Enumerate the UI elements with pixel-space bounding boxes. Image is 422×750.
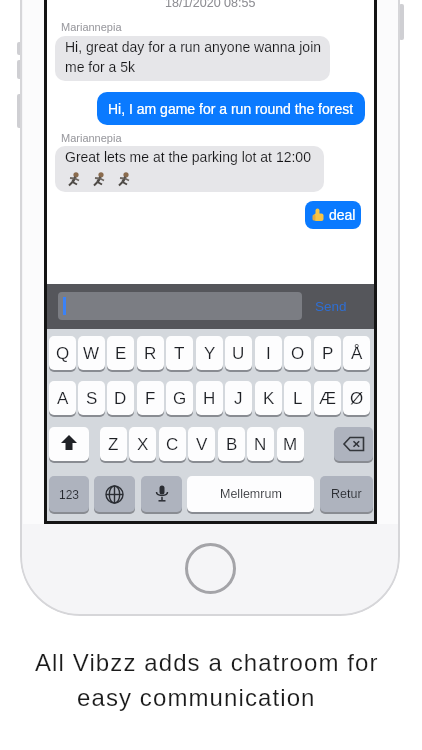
staticText: I [266, 344, 271, 363]
button[interactable]: T [166, 336, 193, 370]
button[interactable] [58, 292, 302, 320]
staticText: 18/1/2020 08:55 [165, 0, 256, 10]
staticText: T [174, 344, 185, 363]
button[interactable]: W [78, 336, 105, 370]
staticText: H [203, 389, 216, 408]
button[interactable]: Q [49, 336, 76, 370]
staticText: All Vibzz adds a chatroom for [35, 649, 379, 676]
button[interactable]: D [107, 381, 134, 415]
staticText: C [166, 435, 179, 454]
button[interactable]: Send [301, 284, 361, 329]
staticText: Hi, great day for a run anyone wanna joi… [65, 39, 322, 75]
button[interactable]: Mellemrum [187, 476, 314, 512]
staticText: S [86, 389, 98, 408]
button[interactable] [94, 476, 135, 512]
staticText: A [57, 389, 69, 408]
button[interactable]: H [196, 381, 223, 415]
button[interactable]: G [166, 381, 193, 415]
staticText: Mellemrum [220, 487, 282, 501]
button[interactable] [185, 543, 236, 594]
button[interactable]: E [107, 336, 134, 370]
staticText: V [196, 435, 208, 454]
button[interactable]: 123 [49, 476, 89, 512]
staticText: Y [204, 344, 216, 363]
staticText: D [114, 389, 127, 408]
staticText: Retur [331, 487, 362, 501]
button[interactable]: Å [343, 336, 370, 370]
button[interactable]: N [247, 427, 274, 461]
staticText: Å [351, 344, 363, 363]
button[interactable]: O [284, 336, 311, 370]
staticText: W [83, 344, 100, 363]
button[interactable]: U [225, 336, 252, 370]
button[interactable]: M [277, 427, 304, 461]
staticText: Ø [350, 389, 364, 408]
button[interactable]: R [137, 336, 164, 370]
button[interactable]: K [255, 381, 282, 415]
staticText: N [254, 435, 267, 454]
button[interactable]: Retur [320, 476, 373, 512]
button[interactable]: L [284, 381, 311, 415]
button[interactable]: Y [196, 336, 223, 370]
button[interactable]: X [129, 427, 156, 461]
staticText: G [173, 389, 187, 408]
staticText: Q [56, 344, 70, 363]
staticText: L [293, 389, 303, 408]
staticText: Mariannepia [61, 132, 122, 144]
staticText: X [137, 435, 149, 454]
button[interactable]: deal [305, 201, 361, 229]
staticText: K [263, 389, 275, 408]
staticText: J [234, 389, 243, 408]
button[interactable]: B [218, 427, 245, 461]
staticText: M [283, 435, 298, 454]
button[interactable] [141, 476, 182, 512]
staticText: Hi, I am game for a run round the forest [108, 101, 354, 117]
button[interactable] [49, 427, 89, 461]
button[interactable]: Ø [343, 381, 370, 415]
staticText: R [144, 344, 157, 363]
staticText: U [232, 344, 245, 363]
staticText: Mariannepia [61, 21, 122, 33]
staticText: easy communication [77, 684, 316, 711]
staticText: 123 [59, 488, 80, 501]
staticText: B [226, 435, 238, 454]
staticText: Æ [319, 389, 336, 408]
staticText: P [322, 344, 334, 363]
staticText: E [115, 344, 127, 363]
button[interactable]: J [225, 381, 252, 415]
button[interactable]: S [78, 381, 105, 415]
button[interactable]: V [188, 427, 215, 461]
button[interactable]: F [137, 381, 164, 415]
button[interactable]: P [314, 336, 341, 370]
button[interactable]: Hi, I am game for a run round the forest [97, 92, 365, 125]
button[interactable] [334, 427, 373, 461]
button[interactable]: Z [100, 427, 127, 461]
button[interactable]: A [49, 381, 76, 415]
button[interactable]: I [255, 336, 282, 370]
staticText: Z [108, 435, 119, 454]
staticText: Great lets me at the parking lot at 12:0… [65, 149, 311, 165]
staticText: O [291, 344, 305, 363]
staticText: deal [325, 207, 356, 223]
staticText: F [145, 389, 156, 408]
staticText: Send [315, 299, 347, 314]
button[interactable]: Æ [314, 381, 341, 415]
button[interactable]: C [159, 427, 186, 461]
